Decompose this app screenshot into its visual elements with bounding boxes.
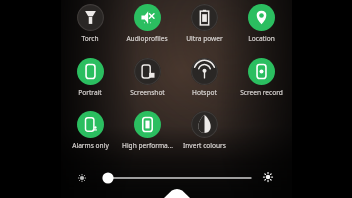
staticText: Screen record (240, 88, 283, 97)
staticText: Hotspot (192, 88, 217, 97)
staticText: High performa… (122, 141, 173, 150)
staticText: Alarms only (72, 141, 109, 150)
staticText: Ultra power (186, 34, 223, 43)
button[interactable]: Audioprofiles (119, 2, 175, 43)
staticText: Screenshot (130, 88, 165, 97)
staticText: Portrait (78, 88, 102, 97)
button[interactable]: High performa… (119, 109, 175, 150)
button[interactable]: Hotspot (176, 56, 232, 97)
button[interactable]: Ultra power (176, 2, 232, 43)
button[interactable]: Invert colours (176, 109, 232, 150)
button[interactable]: Portrait (62, 56, 118, 97)
button[interactable]: Screen record (233, 56, 289, 97)
staticText: Audioprofiles (126, 34, 168, 43)
button[interactable]: Alarms only (62, 109, 118, 150)
staticText: Location (248, 34, 275, 43)
button[interactable] (101, 166, 253, 190)
button[interactable]: Maximum brightness (259, 168, 277, 186)
staticText: Invert colours (183, 141, 226, 150)
button[interactable]: Minimum brightness (75, 171, 89, 185)
button[interactable]: Location (233, 2, 289, 43)
button[interactable]: Torch (62, 2, 118, 43)
staticText: Torch (81, 34, 99, 43)
button[interactable]: Screenshot (119, 56, 175, 97)
